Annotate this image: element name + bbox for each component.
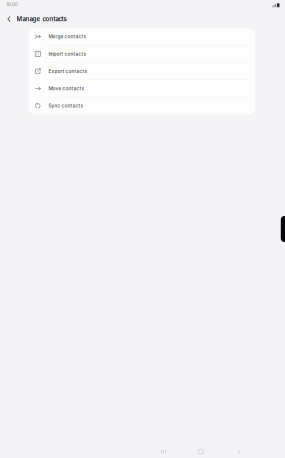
- staticText: Merge contacts: [48, 34, 86, 39]
- button[interactable]: Merge contacts: [29, 28, 255, 45]
- button[interactable]: Back: [226, 444, 252, 458]
- button[interactable]: Recent apps: [150, 443, 176, 458]
- staticText: Manage contacts: [17, 15, 67, 23]
- button[interactable]: Move contacts: [29, 80, 255, 97]
- staticText: Sync contacts: [48, 103, 83, 109]
- button[interactable]: Back: [0, 13, 14, 26]
- button[interactable]: Import contacts: [29, 45, 255, 62]
- button[interactable]: Edge panel: [281, 216, 285, 242]
- button[interactable]: Export contacts: [29, 63, 255, 80]
- button[interactable]: Sync contacts: [29, 97, 255, 114]
- staticText: Import contacts: [48, 51, 86, 57]
- staticText: Move contacts: [48, 86, 84, 91]
- staticText: 16:00: [6, 2, 18, 7]
- staticText: Export contacts: [48, 68, 87, 74]
- button[interactable]: Home: [188, 444, 214, 458]
